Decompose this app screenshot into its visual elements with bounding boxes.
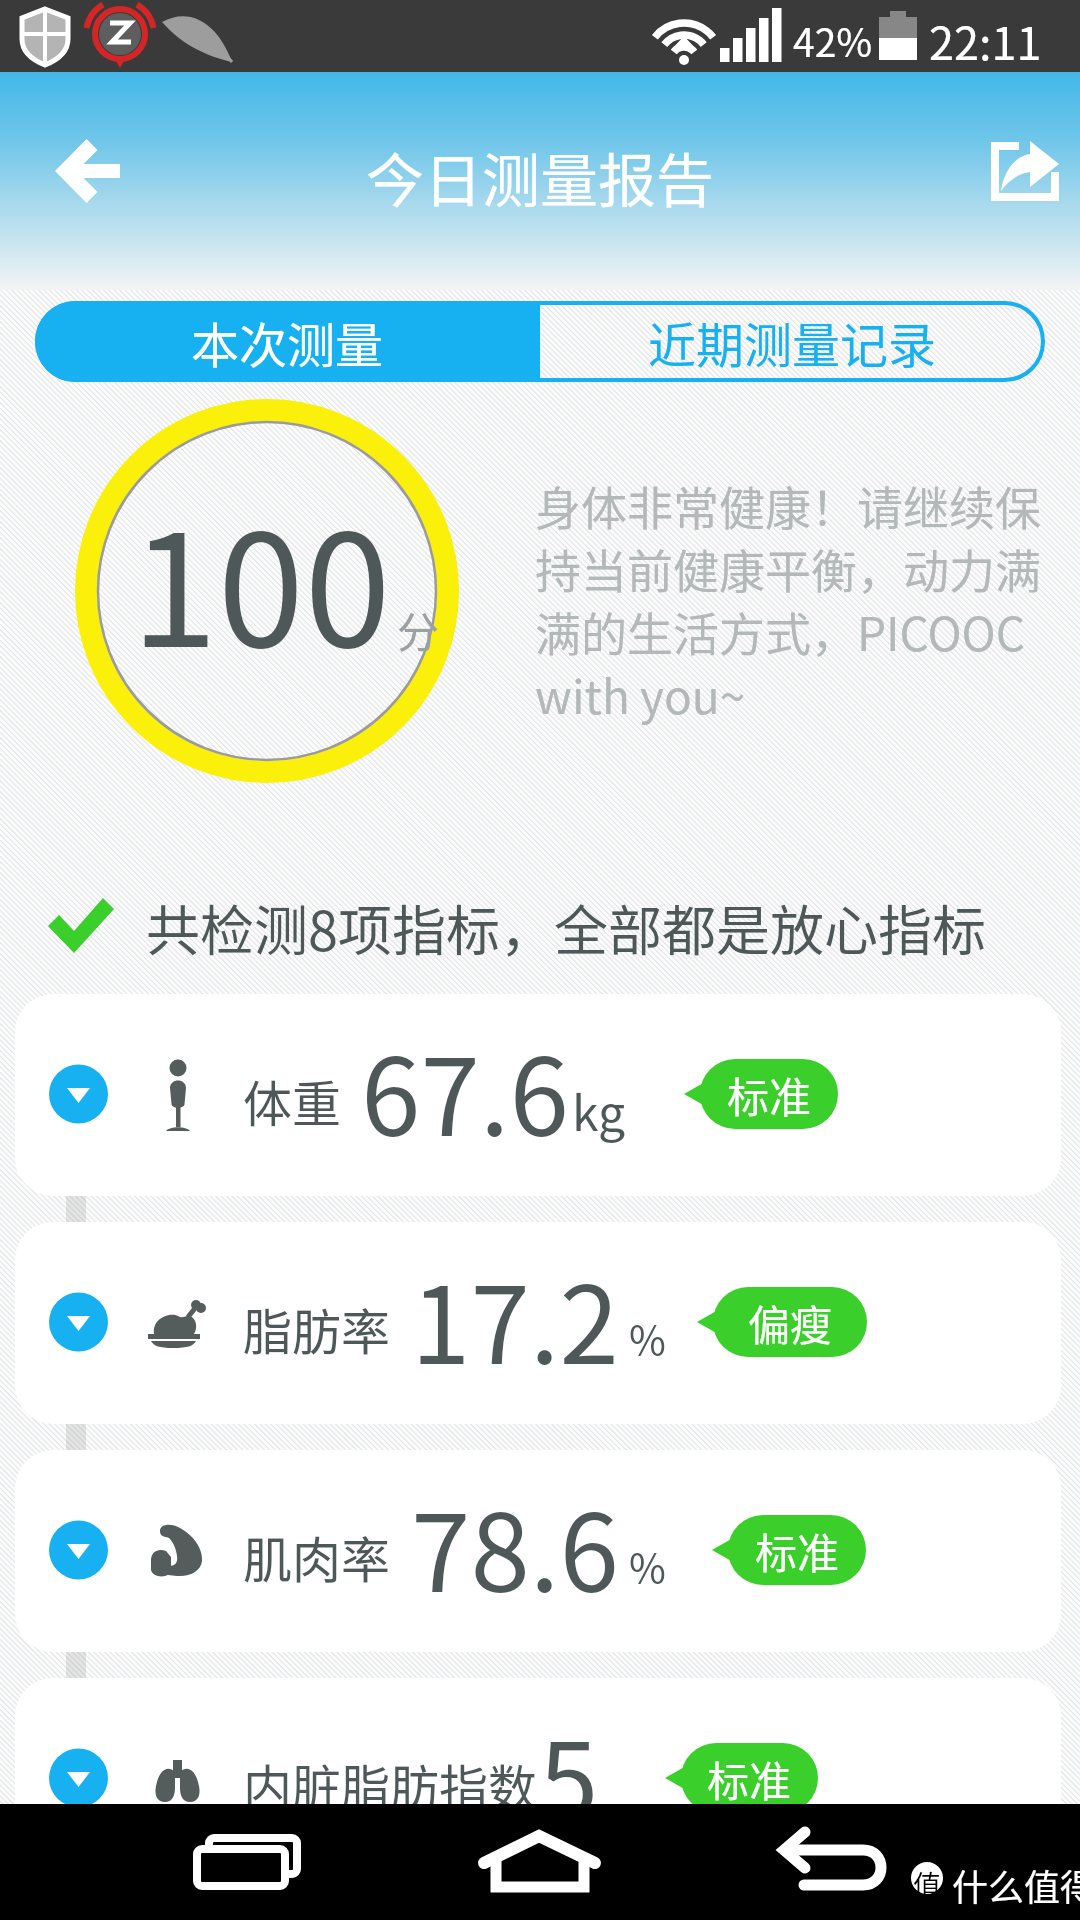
button[interactable]: Share	[960, 110, 1080, 230]
staticText: 标准	[707, 1748, 792, 1809]
button[interactable]: 肌肉率	[15, 1450, 1061, 1652]
button[interactable]: 脂肪率	[15, 1222, 1061, 1424]
staticText: 标准	[727, 1064, 812, 1125]
staticText: 肌肉率	[243, 1521, 391, 1592]
staticText: 22:11	[929, 8, 1042, 73]
staticText: 共检测8项指标，全部都是放心指标	[146, 888, 986, 966]
staticText: 标准	[755, 1520, 840, 1581]
staticText: kg	[572, 1075, 626, 1145]
button[interactable]: Back	[760, 1804, 920, 1920]
staticText: 身体非常健康！请继续保持当前健康平衡，动力满满的生活方式，PICOOC with…	[535, 472, 1050, 728]
staticText: 今日测量报告	[366, 135, 715, 219]
button[interactable]: Home	[460, 1804, 620, 1920]
staticText: 内脏脂肪指数	[243, 1749, 538, 1820]
button[interactable]: 近期测量记录	[540, 301, 1045, 382]
button[interactable]: 内脏脂肪指数	[15, 1678, 1061, 1880]
staticText: 脂肪率	[243, 1293, 391, 1364]
button[interactable]: 体重	[15, 994, 1061, 1196]
staticText: %	[629, 1309, 666, 1367]
staticText: %	[629, 1537, 666, 1595]
staticText: 什么值得买	[952, 1859, 1080, 1911]
staticText: 本次测量	[191, 307, 384, 377]
button[interactable]: Back	[40, 100, 180, 240]
staticText: 100	[131, 466, 391, 692]
staticText: 体重	[243, 1065, 342, 1136]
staticText: 5	[539, 1696, 599, 1851]
staticText: 偏瘦	[748, 1292, 833, 1353]
staticText: 近期测量记录	[648, 307, 937, 377]
staticText: 67.6	[361, 1012, 569, 1167]
staticText: 分	[397, 599, 440, 660]
staticText: 值	[913, 1864, 942, 1905]
staticText: 78.6	[411, 1468, 619, 1623]
staticText: 42%	[793, 12, 873, 68]
staticText: 17.2	[411, 1240, 619, 1395]
button[interactable]: 本次测量	[35, 301, 540, 382]
button[interactable]: Recent apps	[170, 1804, 330, 1920]
